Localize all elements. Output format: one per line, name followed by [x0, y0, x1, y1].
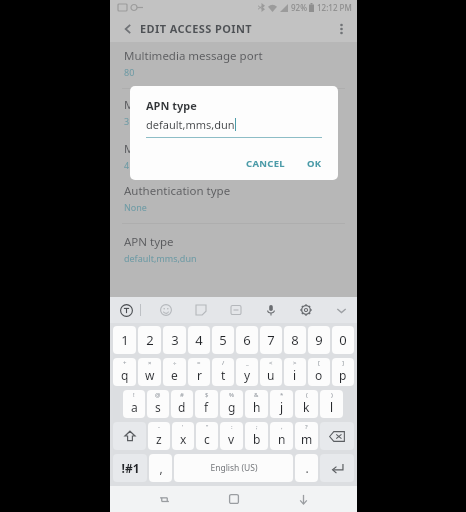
staticText: q: [121, 367, 129, 383]
button[interactable]: 8: [284, 326, 306, 354]
staticText: f: [204, 399, 209, 415]
button[interactable]: #: [171, 390, 193, 418]
staticText: &: [254, 391, 259, 399]
staticText: ): [331, 391, 333, 399]
staticText: MNC: [124, 141, 151, 157]
staticText: 5: [219, 331, 227, 349]
staticText: u: [267, 367, 275, 383]
button[interactable]: :: [220, 422, 243, 450]
button[interactable]: @: [147, 390, 169, 418]
button[interactable]: !: [123, 390, 145, 418]
staticText: 9: [315, 331, 323, 349]
button[interactable]: Voice input: [261, 300, 281, 320]
button[interactable]: 0: [332, 326, 354, 354]
button[interactable]: Recents: [149, 486, 179, 512]
staticText: 6: [243, 331, 251, 349]
staticText: g: [228, 399, 236, 415]
staticText: ': [182, 423, 184, 431]
staticText: r: [197, 367, 202, 383]
staticText: None: [124, 201, 147, 213]
button[interactable]: OK: [301, 153, 328, 174]
button[interactable]: _: [236, 358, 258, 386]
button[interactable]: ÷: [163, 358, 186, 386]
button[interactable]: !#1: [113, 454, 147, 482]
button[interactable]: 3: [163, 326, 186, 354]
staticText: !#1: [121, 460, 140, 476]
button[interactable]: ,: [270, 422, 293, 450]
button[interactable]: [: [308, 358, 330, 386]
button[interactable]: ]: [332, 358, 354, 386]
button[interactable]: >: [284, 358, 306, 386]
staticText: n: [278, 431, 286, 447]
button[interactable]: More options: [331, 19, 351, 39]
staticText: 8: [291, 331, 299, 349]
staticText: 1: [121, 331, 129, 349]
staticText: default,mms,dun: [146, 117, 235, 132]
button[interactable]: ,: [149, 454, 172, 482]
button[interactable]: 4: [188, 326, 210, 354]
button[interactable]: ;: [245, 422, 268, 450]
button[interactable]: 1: [113, 326, 136, 354]
button[interactable]: *: [270, 390, 293, 418]
staticText: :: [231, 423, 233, 431]
button[interactable]: $: [195, 390, 218, 418]
button[interactable]: -: [148, 422, 170, 450]
staticText: default,mms,dun: [124, 252, 197, 264]
button[interactable]: ): [320, 390, 343, 418]
button[interactable]: 9: [308, 326, 330, 354]
button[interactable]: GIF: [226, 300, 246, 320]
staticText: y: [244, 367, 251, 383]
staticText: English (US): [210, 462, 258, 474]
button[interactable]: 2: [138, 326, 161, 354]
button[interactable]: =: [188, 358, 210, 386]
button[interactable]: ': [172, 422, 194, 450]
staticText: i: [293, 367, 297, 383]
button[interactable]: .: [295, 454, 318, 482]
button[interactable]: ×: [138, 358, 161, 386]
button[interactable]: CANCEL: [240, 153, 291, 174]
staticText: +: [123, 359, 127, 367]
button[interactable]: Collapse: [331, 300, 351, 320]
staticText: >: [293, 359, 297, 367]
button[interactable]: Emoji: [156, 300, 176, 320]
staticText: 310: [124, 115, 140, 127]
button[interactable]: 6: [236, 326, 258, 354]
button[interactable]: Home: [219, 486, 249, 512]
button[interactable]: 5: [212, 326, 234, 354]
button[interactable]: <: [260, 358, 282, 386]
staticText: MCC: [124, 97, 149, 113]
staticText: x: [180, 431, 187, 447]
button[interactable]: Shift: [113, 422, 146, 450]
button[interactable]: ": [196, 422, 218, 450]
button[interactable]: +: [113, 358, 136, 386]
staticText: b: [253, 431, 261, 447]
staticText: 0: [339, 331, 347, 349]
button[interactable]: Enter: [320, 454, 354, 482]
staticText: 7: [267, 331, 275, 349]
button[interactable]: &: [245, 390, 268, 418]
button[interactable]: English (US): [174, 454, 293, 482]
button[interactable]: (: [295, 390, 318, 418]
staticText: ": [206, 423, 209, 431]
staticText: l: [330, 399, 334, 415]
staticText: c: [204, 431, 210, 447]
staticText: ÷: [173, 359, 177, 367]
button[interactable]: Keyboard settings: [296, 300, 316, 320]
staticText: 2: [146, 331, 154, 349]
staticText: t: [221, 367, 226, 383]
button[interactable]: Back: [118, 19, 138, 39]
staticText: _: [246, 359, 249, 367]
staticText: z: [156, 431, 162, 447]
button[interactable]: ?: [295, 422, 318, 450]
button[interactable]: Stickers: [191, 300, 211, 320]
staticText: v: [228, 431, 235, 447]
button[interactable]: Toggle input: [116, 300, 136, 320]
button[interactable]: Backspace: [320, 422, 354, 450]
staticText: k: [303, 399, 310, 415]
button[interactable]: 7: [260, 326, 282, 354]
button[interactable]: Hide keyboard: [288, 486, 318, 512]
button[interactable]: /: [212, 358, 234, 386]
staticText: /: [222, 359, 225, 367]
button[interactable]: %: [220, 390, 243, 418]
staticText: e: [171, 367, 178, 383]
